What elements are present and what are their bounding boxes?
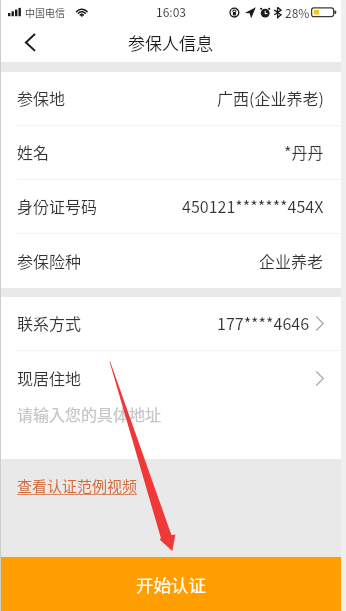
staticText: 现居住地 [17, 366, 82, 389]
staticText: 姓名 [17, 140, 50, 163]
button[interactable]: 查看认证范例视频 [17, 475, 138, 497]
staticText: 联系方式 [17, 311, 82, 334]
button[interactable]: 参保地 [0, 72, 341, 126]
staticText: 参保人信息 [128, 30, 213, 55]
button[interactable]: Back [0, 22, 52, 62]
staticText: 参保险种 [17, 249, 82, 272]
button[interactable]: 身份证号码 [0, 180, 341, 234]
button[interactable]: 联系方式 [0, 297, 341, 351]
staticText: 450121*******454X [182, 194, 324, 217]
button[interactable]: 开始认证 [0, 557, 341, 611]
staticText: 企业养老 [259, 249, 324, 272]
staticText: 28% [285, 4, 310, 21]
staticText: 16:03 [156, 3, 186, 20]
staticText: 开始认证 [136, 572, 206, 597]
staticText: 请输入您的具体地址 [17, 402, 162, 425]
staticText: 参保地 [17, 86, 66, 109]
staticText: *丹丹 [284, 140, 324, 163]
button[interactable]: 姓名 [0, 126, 341, 180]
staticText: 中国电信 [25, 5, 65, 19]
staticText: 177****4646 [217, 311, 310, 334]
button[interactable]: 现居住地 [0, 351, 341, 405]
staticText: 查看认证范例视频 [17, 475, 138, 497]
staticText: 广西(企业养老) [217, 86, 324, 109]
button[interactable]: 参保险种 [0, 234, 341, 288]
staticText: 身份证号码 [17, 194, 98, 217]
